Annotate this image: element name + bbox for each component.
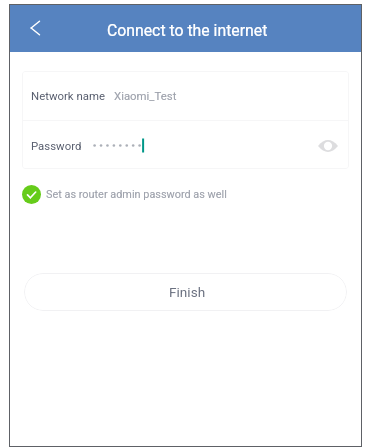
staticText: Xiaomi_Test — [114, 89, 177, 102]
button[interactable]: Show password — [313, 130, 343, 160]
button[interactable]: Back — [9, 4, 59, 52]
staticText: Set as router admin password as well — [46, 188, 227, 201]
button[interactable]: Finish — [24, 273, 347, 311]
staticText: Password — [31, 139, 82, 152]
button[interactable]: Password — [22, 121, 349, 169]
button[interactable]: Network name — [22, 71, 349, 120]
staticText: Finish — [169, 284, 206, 300]
button[interactable]: Set as router admin password as well — [22, 181, 227, 207]
staticText: Connect to the internet — [107, 21, 268, 40]
staticText: Network name — [31, 89, 105, 102]
